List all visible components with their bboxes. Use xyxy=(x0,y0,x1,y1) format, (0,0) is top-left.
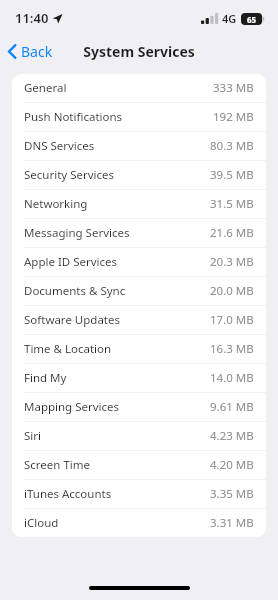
staticText: Messaging Services xyxy=(24,225,130,241)
button[interactable]: Find My xyxy=(12,364,266,392)
staticText: 4.23 MB xyxy=(210,428,254,444)
staticText: 20.0 MB xyxy=(210,283,254,299)
staticText: 192 MB xyxy=(213,109,254,125)
staticText: 17.0 MB xyxy=(210,312,254,328)
staticText: System Services xyxy=(83,42,195,61)
staticText: 16.3 MB xyxy=(210,341,254,357)
button[interactable]: Security Services xyxy=(12,161,266,189)
staticText: 333 MB xyxy=(213,80,254,96)
button[interactable]: Siri xyxy=(12,422,266,450)
staticText: Mapping Services xyxy=(24,399,120,415)
button[interactable]: Mapping Services xyxy=(12,393,266,421)
button[interactable]: iCloud xyxy=(12,509,266,537)
button[interactable]: iTunes Accounts xyxy=(12,480,266,508)
staticText: 39.5 MB xyxy=(210,167,254,183)
button[interactable]: DNS Services xyxy=(12,132,266,160)
staticText: Time & Location xyxy=(24,341,112,357)
staticText: 21.6 MB xyxy=(210,225,254,241)
staticText: 3.31 MB xyxy=(210,515,254,531)
staticText: 4G xyxy=(222,11,237,26)
button[interactable]: Messaging Services xyxy=(12,219,266,247)
staticText: 31.5 MB xyxy=(210,196,254,212)
button[interactable]: Documents & Sync xyxy=(12,277,266,305)
staticText: DNS Services xyxy=(24,138,95,154)
staticText: Siri xyxy=(24,428,41,444)
staticText: 80.3 MB xyxy=(210,138,254,154)
staticText: Screen Time xyxy=(24,457,91,473)
staticText: 65 xyxy=(247,14,257,25)
staticText: Networking xyxy=(24,196,88,212)
staticText: Security Services xyxy=(24,167,115,183)
button[interactable]: Networking xyxy=(12,190,266,218)
staticText: Apple ID Services xyxy=(24,254,118,270)
button[interactable]: Back xyxy=(0,38,61,65)
staticText: iCloud xyxy=(24,515,59,531)
button[interactable]: Apple ID Services xyxy=(12,248,266,276)
staticText: 3.35 MB xyxy=(210,486,254,502)
staticText: Find My xyxy=(24,370,67,386)
staticText: 14.0 MB xyxy=(210,370,254,386)
button[interactable]: Push Notifications xyxy=(12,103,266,131)
staticText: Software Updates xyxy=(24,312,121,328)
staticText: General xyxy=(24,80,67,96)
staticText: Push Notifications xyxy=(24,109,123,125)
staticText: Documents & Sync xyxy=(24,283,126,299)
staticText: Back xyxy=(21,42,53,61)
staticText: iTunes Accounts xyxy=(24,486,112,502)
staticText: 11:40 xyxy=(15,9,49,27)
staticText: 4.20 MB xyxy=(210,457,254,473)
button[interactable]: Software Updates xyxy=(12,306,266,334)
staticText: 9.61 MB xyxy=(210,399,254,415)
button[interactable]: General xyxy=(12,74,266,102)
button[interactable]: Screen Time xyxy=(12,451,266,479)
button[interactable]: Time & Location xyxy=(12,335,266,363)
staticText: 20.3 MB xyxy=(210,254,254,270)
